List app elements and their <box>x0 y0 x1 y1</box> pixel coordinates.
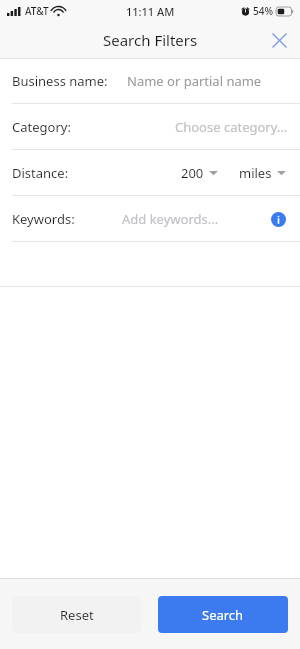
button[interactable]: Reset <box>12 596 141 633</box>
staticText: AT&T <box>25 4 49 18</box>
staticText: 200 <box>181 164 204 182</box>
staticText: Choose category... <box>175 118 288 136</box>
button[interactable]: Business name: <box>0 59 300 103</box>
button[interactable]: 200 <box>179 158 220 188</box>
button[interactable]: Keywords info <box>266 207 290 231</box>
staticText: Category: <box>12 118 71 136</box>
staticText: Search <box>202 606 244 624</box>
staticText: Search Filters <box>103 30 198 50</box>
button[interactable]: Category: <box>0 104 300 149</box>
button[interactable]: Add keywords... <box>122 210 219 228</box>
button[interactable]: Search <box>158 596 288 633</box>
staticText: 11:11 AM <box>126 4 175 19</box>
staticText: Business name: <box>12 72 108 90</box>
staticText: Reset <box>60 606 94 624</box>
button[interactable]: miles <box>237 158 288 188</box>
staticText: miles <box>239 164 272 182</box>
staticText: Keywords: <box>12 210 75 228</box>
staticText: 54% <box>253 4 273 18</box>
staticText: Name or partial name <box>127 72 262 90</box>
staticText: Distance: <box>12 164 69 182</box>
button[interactable]: Close <box>264 25 294 55</box>
staticText: Add keywords... <box>122 210 219 228</box>
